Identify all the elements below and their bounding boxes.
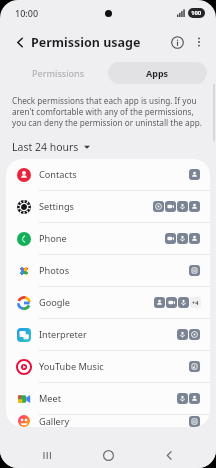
staticText: Google <box>39 296 71 309</box>
button[interactable]: Apps <box>108 62 207 84</box>
button[interactable]: More options <box>188 31 210 53</box>
button[interactable]: Meet <box>6 383 210 414</box>
button[interactable]: Recent apps <box>35 442 61 468</box>
staticText: Interpreter <box>39 328 87 341</box>
staticText: Apps <box>146 67 169 79</box>
staticText: Photos <box>39 264 70 277</box>
staticText: +4 <box>192 299 199 306</box>
staticText: Permissions <box>32 67 85 79</box>
staticText: YouTube Music <box>39 360 104 373</box>
staticText: 100 <box>191 9 202 17</box>
button[interactable]: Back <box>156 442 182 468</box>
button[interactable]: Permissions <box>9 62 108 84</box>
staticText: Contacts <box>39 168 77 181</box>
button[interactable]: Google <box>6 287 210 318</box>
button[interactable]: Interpreter <box>6 319 210 350</box>
button[interactable]: Last 24 hours <box>12 140 90 154</box>
staticText: Check permissions that each app is using… <box>12 95 203 128</box>
staticText: Settings <box>39 200 74 213</box>
button[interactable]: Gallery <box>6 415 210 427</box>
staticText: Meet <box>39 392 62 405</box>
button[interactable]: Contacts <box>6 159 210 190</box>
button[interactable]: Photos <box>6 255 210 286</box>
staticText: Last 24 hours <box>12 140 79 154</box>
button[interactable]: Home <box>95 442 121 468</box>
staticText: 10:00 <box>15 7 39 19</box>
staticText: Permission usage <box>31 34 141 51</box>
button[interactable]: Phone <box>6 223 210 254</box>
button[interactable]: Information <box>166 31 188 53</box>
button[interactable]: Back <box>9 31 31 53</box>
staticText: Phone <box>39 232 67 245</box>
staticText: Gallery <box>39 415 70 427</box>
button[interactable]: YouTube Music <box>6 351 210 382</box>
button[interactable]: Settings <box>6 191 210 222</box>
